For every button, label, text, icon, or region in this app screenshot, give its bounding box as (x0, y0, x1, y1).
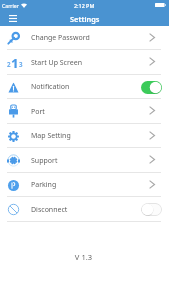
staticText: Map Setting (31, 131, 71, 141)
staticText: Settings (70, 14, 100, 24)
staticText: Notification (31, 82, 70, 92)
staticText: Change Password (31, 33, 90, 43)
staticText: 1 (11, 55, 19, 68)
staticText: V 1.3 (0, 252, 168, 262)
button[interactable]: Notification on (141, 81, 162, 94)
staticText: 2 (7, 60, 11, 68)
button[interactable]: 2 (0, 50, 169, 75)
staticText: Start Up Screen (31, 58, 82, 68)
button[interactable]: Disconnect (0, 197, 169, 222)
staticText: Support (31, 156, 58, 166)
button[interactable]: Port (0, 99, 169, 124)
button[interactable]: Map Setting (0, 124, 169, 148)
button[interactable]: Change Password (0, 26, 169, 50)
staticText: 2:12 PM (74, 2, 95, 9)
button[interactable]: Parking (0, 173, 169, 197)
button[interactable]: Support (0, 148, 169, 173)
staticText: Port (31, 107, 45, 117)
button[interactable]: Disconnect off (141, 203, 162, 216)
button[interactable]: Notification (0, 75, 169, 99)
button[interactable]: Menu (0, 11, 25, 26)
staticText: Parking (31, 180, 57, 190)
staticText: Carrier (2, 2, 19, 9)
staticText: 3 (19, 60, 20, 68)
staticText: Disconnect (31, 205, 68, 215)
